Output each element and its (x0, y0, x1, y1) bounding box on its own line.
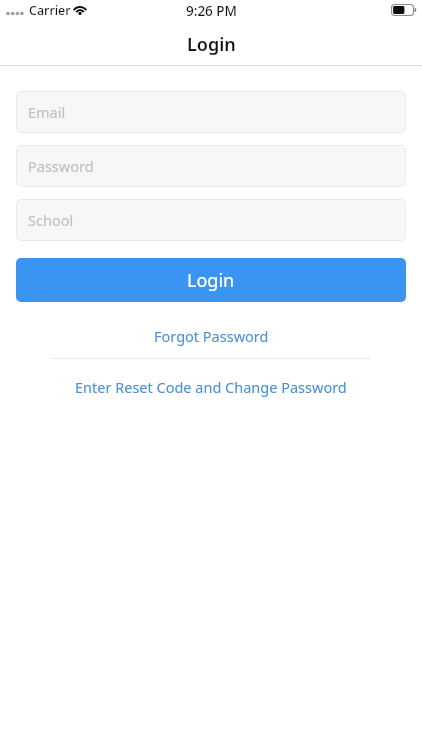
staticText: Email (28, 102, 66, 122)
staticText: Enter Reset Code and Change Password (75, 377, 347, 397)
button[interactable]: Forgot Password (0, 325, 422, 346)
button[interactable]: Email (16, 91, 406, 133)
staticText: School (28, 210, 74, 230)
button[interactable]: Password (16, 145, 406, 187)
button[interactable]: Enter Reset Code and Change Password (0, 376, 422, 397)
other: Wi-Fi signal (72, 4, 88, 15)
staticText: Login (187, 268, 235, 293)
staticText: Forgot Password (154, 326, 269, 346)
staticText: Password (28, 156, 94, 176)
staticText: Carrier (29, 2, 71, 19)
button[interactable]: School (16, 199, 406, 241)
button[interactable]: Login (16, 258, 406, 302)
staticText: 9:26 PM (186, 2, 237, 20)
other: Battery (391, 4, 418, 17)
staticText: Login (187, 32, 236, 57)
